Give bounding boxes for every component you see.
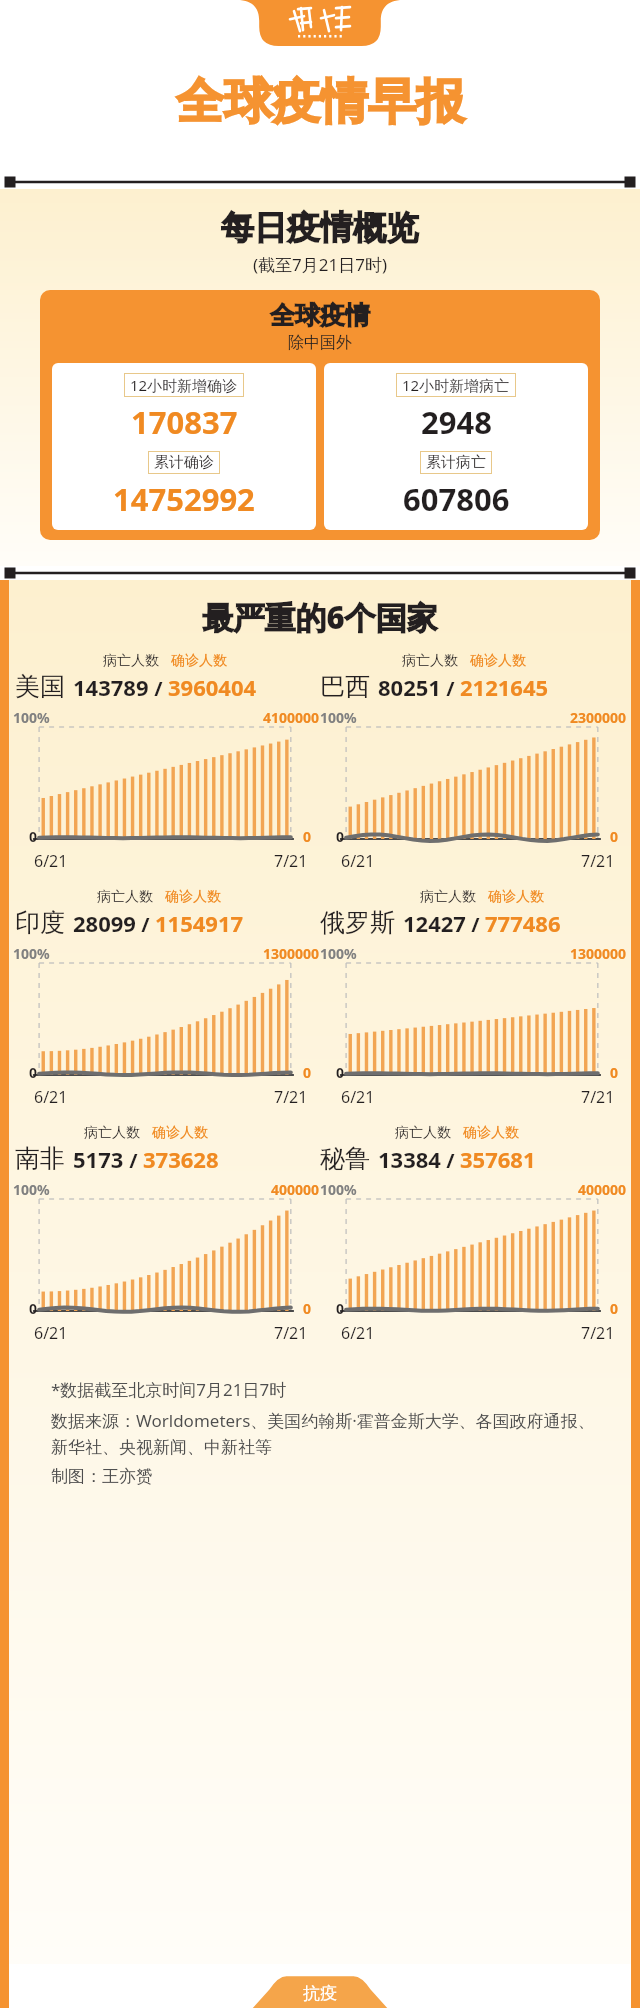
staticText: 0 <box>29 1063 38 1082</box>
staticText: 13384 <box>378 1144 441 1174</box>
staticText: 7/21 <box>581 1086 615 1108</box>
staticText: 0 <box>303 1063 312 1082</box>
staticText: 7/21 <box>581 1322 615 1344</box>
staticText: 4100000 <box>263 708 320 727</box>
staticText: 100% <box>320 944 357 963</box>
staticText: 777486 <box>485 908 561 938</box>
staticText: 病亡人数 <box>103 652 159 670</box>
staticText: 全球疫情 <box>270 300 370 331</box>
staticText: 80251 <box>378 672 441 702</box>
staticText: 除中国外 <box>288 333 352 353</box>
staticText: 0 <box>303 1299 312 1318</box>
staticText: 0 <box>303 827 312 846</box>
staticText: / <box>136 911 155 938</box>
staticText: 6/21 <box>34 1086 68 1108</box>
staticText: 确诊人数 <box>171 652 227 670</box>
staticText: 5173 <box>73 1144 124 1174</box>
staticText: 6/21 <box>34 850 68 872</box>
staticText: 美国 <box>15 671 65 702</box>
staticText: 确诊人数 <box>152 1124 208 1142</box>
staticText: 7/21 <box>274 1322 308 1344</box>
staticText: / <box>466 911 485 938</box>
staticText: 病亡人数 <box>395 1124 451 1142</box>
staticText: / <box>441 675 460 702</box>
staticText: 最严重的6个国家 <box>9 596 631 638</box>
staticText: 357681 <box>460 1144 536 1174</box>
staticText: 0 <box>336 827 345 846</box>
staticText: 2300000 <box>570 708 627 727</box>
staticText: 制图：王亦赟 <box>51 1466 153 1487</box>
staticText: 6/21 <box>341 850 375 872</box>
staticText: / <box>124 1147 143 1174</box>
staticText: 1300000 <box>570 944 627 963</box>
staticText: 病亡人数 <box>97 888 153 906</box>
staticText: 病亡人数 <box>402 652 458 670</box>
staticText: 俄罗斯 <box>320 907 395 938</box>
staticText: 0 <box>610 827 619 846</box>
staticText: 秘鲁 <box>320 1143 370 1174</box>
staticText: 373628 <box>143 1144 219 1174</box>
staticText: 7/21 <box>274 850 308 872</box>
staticText: 病亡人数 <box>84 1124 140 1142</box>
staticText: 累计病亡 <box>426 453 486 472</box>
staticText: 确诊人数 <box>470 652 526 670</box>
staticText: 6/21 <box>341 1086 375 1108</box>
staticText: 100% <box>13 944 50 963</box>
staticText: 0 <box>29 1299 38 1318</box>
staticText: 南非 <box>15 1143 65 1174</box>
staticText: / <box>441 1147 460 1174</box>
staticText: 6/21 <box>34 1322 68 1344</box>
staticText: 2121645 <box>460 672 549 702</box>
staticText: 0 <box>336 1299 345 1318</box>
staticText: 确诊人数 <box>463 1124 519 1142</box>
staticText: 0 <box>610 1299 619 1318</box>
staticText: 数据来源：Worldometers、美国约翰斯·霍普金斯大学、各国政府通报、新华… <box>51 1409 601 1458</box>
staticText: 607806 <box>403 478 510 520</box>
staticText: 0 <box>336 1063 345 1082</box>
button[interactable]: 全球疫情 <box>40 290 600 540</box>
staticText: 400000 <box>271 1180 320 1199</box>
staticText: 每日疫情概览 <box>0 207 640 249</box>
staticText: 全球疫情早报 <box>176 72 464 132</box>
staticText: 100% <box>320 1180 357 1199</box>
staticText: 100% <box>13 708 50 727</box>
staticText: 28099 <box>73 908 136 938</box>
staticText: 12小时新增确诊 <box>130 375 238 395</box>
staticText: 累计确诊 <box>154 453 214 472</box>
staticText: 12小时新增病亡 <box>402 375 510 395</box>
staticText: 巴西 <box>320 671 370 702</box>
staticText: 143789 <box>73 672 149 702</box>
button[interactable]: 抗疫 <box>0 1964 640 2008</box>
staticText: 100% <box>13 1180 50 1199</box>
staticText: / <box>149 675 168 702</box>
staticText: 0 <box>29 827 38 846</box>
staticText: 抗疫 <box>303 1983 337 2004</box>
staticText: 2948 <box>421 401 492 443</box>
staticText: 400000 <box>578 1180 627 1199</box>
staticText: 14752992 <box>113 478 255 520</box>
staticText: 0 <box>610 1063 619 1082</box>
staticText: *数据截至北京时间7月21日7时 <box>51 1378 287 1401</box>
staticText: (截至7月21日7时) <box>0 253 640 276</box>
staticText: 100% <box>320 708 357 727</box>
staticText: 1154917 <box>155 908 244 938</box>
staticText: 病亡人数 <box>420 888 476 906</box>
staticText: 确诊人数 <box>165 888 221 906</box>
staticText: 1300000 <box>263 944 320 963</box>
staticText: 7/21 <box>274 1086 308 1108</box>
staticText: 确诊人数 <box>488 888 544 906</box>
staticText: 12427 <box>403 908 466 938</box>
staticText: 印度 <box>15 907 65 938</box>
staticText: 3960404 <box>168 672 257 702</box>
staticText: 6/21 <box>341 1322 375 1344</box>
staticText: 7/21 <box>581 850 615 872</box>
staticText: 170837 <box>131 401 238 443</box>
